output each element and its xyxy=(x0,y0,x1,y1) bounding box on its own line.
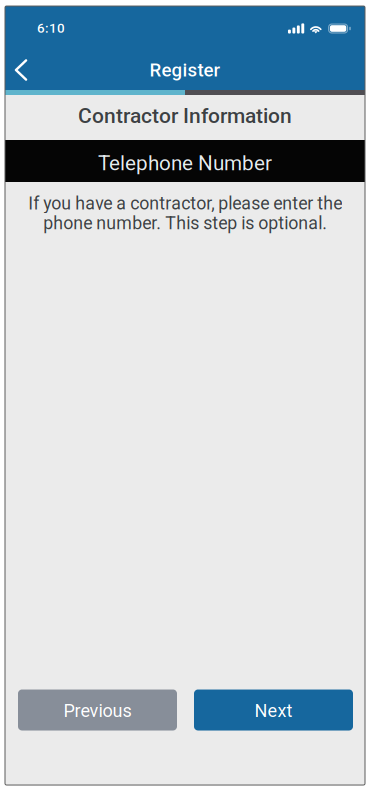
staticText: Next xyxy=(254,700,292,721)
staticText: Previous xyxy=(63,700,131,721)
staticText: If you have a contractor, please enter t… xyxy=(28,193,342,234)
button[interactable]: Previous xyxy=(18,689,177,730)
staticText: Telephone Number xyxy=(98,151,272,175)
staticText: Register xyxy=(149,59,220,81)
staticText: Contractor Information xyxy=(78,103,292,128)
button[interactable]: Back xyxy=(4,50,38,90)
button[interactable]: Next xyxy=(194,689,353,730)
staticText: 6:10 xyxy=(37,20,65,36)
